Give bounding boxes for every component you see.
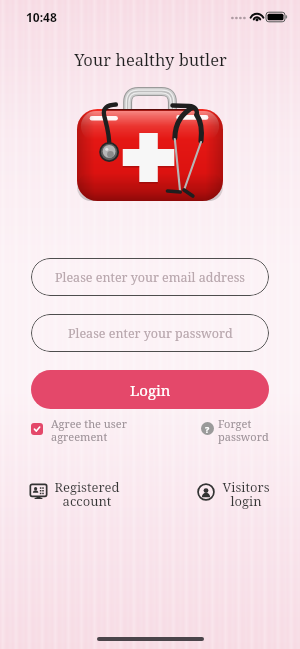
staticText: Please enter your password [68, 325, 233, 342]
button[interactable]: ? [201, 416, 269, 444]
staticText: ? [205, 423, 210, 435]
other: Visitors login [197, 483, 215, 501]
staticText: Login [130, 380, 171, 400]
button[interactable]: Agree the user agreement [31, 416, 127, 444]
staticText: Agree the user agreement [51, 416, 127, 444]
button[interactable]: Login [31, 370, 269, 409]
other: Registered account [30, 484, 47, 499]
staticText: 10:48 [26, 9, 57, 25]
staticText: Forget password [218, 416, 269, 444]
button[interactable]: Please enter your email address [31, 258, 269, 296]
button[interactable]: Registered account [30, 478, 120, 510]
staticText: Registered account [54, 478, 120, 510]
staticText: Please enter your email address [55, 269, 245, 286]
button[interactable]: Visitors login [197, 478, 270, 510]
button[interactable]: Please enter your password [31, 314, 269, 352]
staticText: Visitors login [222, 478, 270, 510]
staticText: Your healthy butler [74, 48, 227, 70]
